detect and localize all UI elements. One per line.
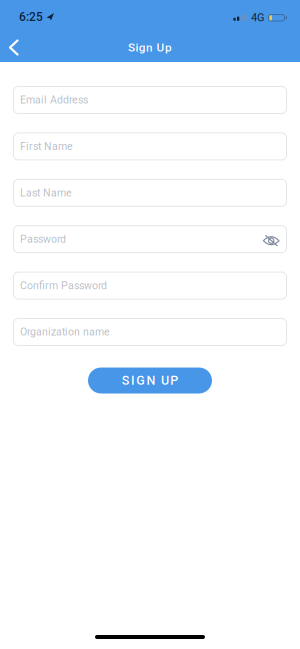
staticText: Password xyxy=(20,233,66,245)
staticText: SIGN UP xyxy=(122,373,178,388)
staticText: Sign Up xyxy=(128,41,172,54)
button[interactable]: Show password xyxy=(263,234,287,245)
staticText: First Name xyxy=(20,140,73,152)
button[interactable]: Email Address xyxy=(13,86,287,114)
staticText: Confirm Password xyxy=(20,279,107,292)
button[interactable]: Last Name xyxy=(13,179,287,207)
staticText: 4G xyxy=(251,11,264,24)
button[interactable]: Confirm Password xyxy=(13,272,287,300)
button[interactable]: Back xyxy=(0,32,17,62)
button[interactable]: SIGN UP xyxy=(88,367,212,393)
button[interactable]: First Name xyxy=(13,132,287,160)
staticText: Email Address xyxy=(20,94,88,106)
button[interactable]: Organization name xyxy=(13,318,287,346)
staticText: Organization name xyxy=(20,326,110,338)
staticText: Last Name xyxy=(20,187,72,199)
staticText: 6:25 xyxy=(19,10,43,24)
